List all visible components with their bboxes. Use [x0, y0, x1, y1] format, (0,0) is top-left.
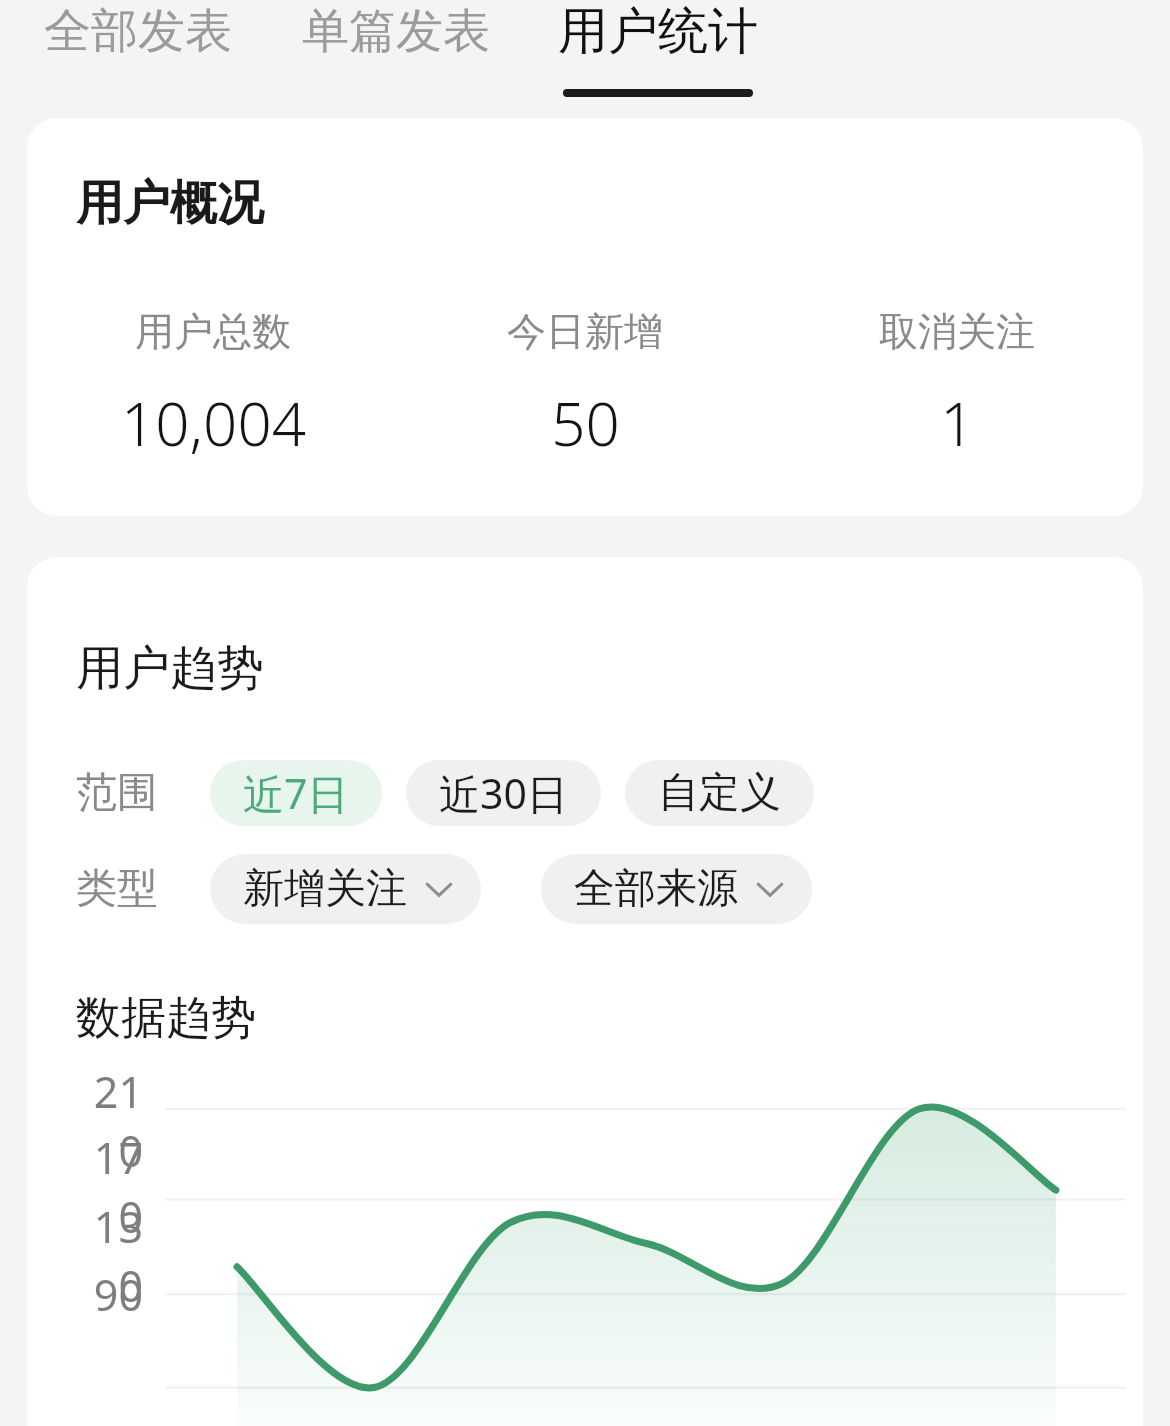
- button[interactable]: 新增关注: [210, 854, 481, 924]
- staticText: 全部发表: [44, 2, 232, 61]
- staticText: 90: [71, 1265, 143, 1324]
- other: 展开 全部来源 选项: [754, 873, 786, 905]
- staticText: 用户统计: [558, 0, 758, 63]
- staticText: 范围: [76, 767, 158, 819]
- button[interactable]: 自定义: [625, 760, 814, 826]
- staticText: 近7日: [243, 765, 349, 821]
- staticText: 130: [71, 1197, 143, 1315]
- button[interactable]: 全部发表: [44, 0, 232, 63]
- staticText: 50: [551, 382, 620, 464]
- staticText: 新增关注: [243, 863, 407, 915]
- staticText: 用户概况: [76, 174, 264, 233]
- button[interactable]: 用户统计: [558, 0, 758, 97]
- button[interactable]: 取消关注: [771, 307, 1143, 464]
- staticText: 210: [71, 1062, 143, 1180]
- staticText: 今日新增: [507, 307, 663, 356]
- staticText: 10,004: [121, 382, 306, 464]
- button[interactable]: 近30日: [406, 760, 601, 826]
- button[interactable]: 近7日: [210, 760, 382, 826]
- button[interactable]: 单篇发表: [302, 0, 490, 63]
- button[interactable]: 用户总数: [27, 307, 399, 464]
- staticText: 用户趋势: [76, 639, 264, 698]
- staticText: 类型: [76, 863, 158, 915]
- staticText: 用户总数: [135, 307, 291, 356]
- other: 展开 新增关注 选项: [423, 873, 455, 905]
- staticText: 170: [71, 1128, 143, 1246]
- staticText: 单篇发表: [302, 2, 490, 61]
- button[interactable]: 全部来源: [541, 854, 812, 924]
- staticText: 自定义: [658, 767, 781, 819]
- staticText: 全部来源: [574, 863, 738, 915]
- button[interactable]: 今日新增: [399, 307, 771, 464]
- staticText: 近30日: [439, 765, 568, 821]
- staticText: 取消关注: [879, 307, 1035, 356]
- staticText: 1: [940, 382, 975, 464]
- staticText: 数据趋势: [76, 990, 256, 1047]
